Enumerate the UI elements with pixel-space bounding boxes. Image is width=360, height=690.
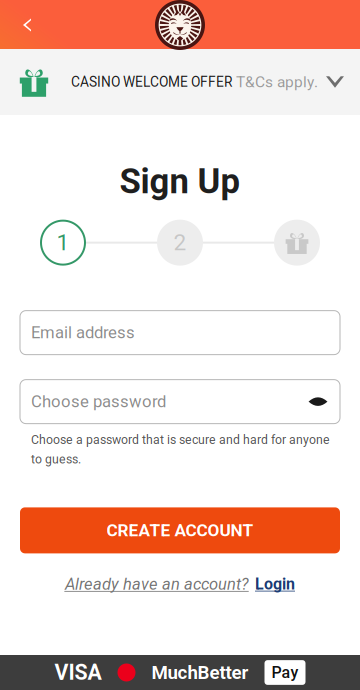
button[interactable]: CREATE ACCOUNT	[20, 507, 340, 553]
staticText: 1	[56, 229, 69, 256]
staticText: to guess.	[31, 452, 81, 466]
staticText: VISA	[54, 660, 101, 685]
staticText: CASINO WELCOME OFFER	[71, 74, 232, 90]
staticText: Email address	[31, 323, 135, 342]
button[interactable]: Show password	[296, 380, 340, 424]
staticText: Sign Up	[119, 161, 240, 202]
button[interactable]: Back	[0, 3, 49, 47]
staticText: Pay	[271, 663, 298, 682]
button[interactable]: Login	[255, 575, 295, 593]
staticText: 2	[173, 229, 186, 256]
staticText: MuchBetter	[151, 662, 248, 683]
staticText: Login	[255, 575, 295, 593]
button[interactable]: CASINO WELCOME OFFER	[0, 49, 360, 115]
staticText: Choose a password that is secure and har…	[31, 433, 330, 447]
staticText: Choose password	[31, 392, 166, 411]
staticText: Already have an account?	[65, 574, 249, 594]
staticText: T&Cs apply.	[236, 73, 318, 91]
staticText: CREATE ACCOUNT	[106, 520, 253, 540]
